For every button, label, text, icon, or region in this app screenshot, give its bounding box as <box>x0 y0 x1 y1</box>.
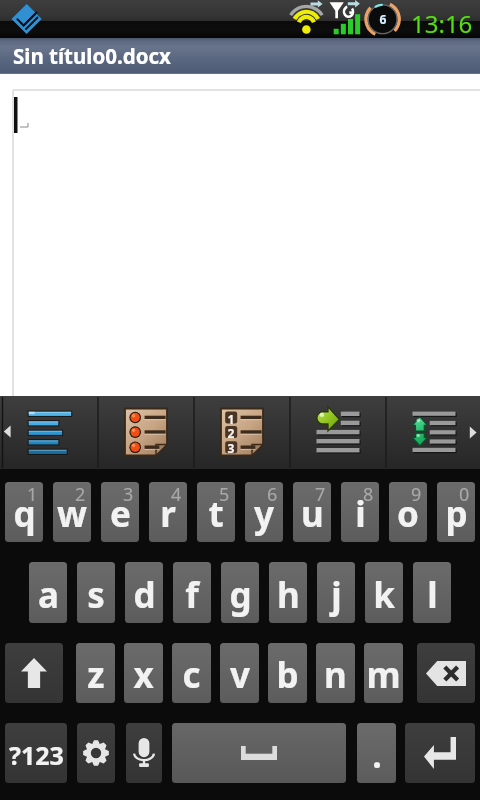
button[interactable]: ?123 <box>5 723 67 783</box>
button[interactable]: n <box>316 643 355 703</box>
staticText: p <box>445 490 468 538</box>
button[interactable]: Sin título0.docx <box>0 38 480 74</box>
button[interactable]: space <box>172 723 346 783</box>
button[interactable]: k <box>365 562 403 623</box>
staticText: 7 <box>315 482 326 507</box>
button[interactable]: l <box>413 562 451 623</box>
button[interactable]: del <box>417 643 475 703</box>
button[interactable]: gear <box>77 723 115 783</box>
button[interactable]: y <box>245 482 283 542</box>
button[interactable]: Numbered list <box>195 396 291 469</box>
staticText: k <box>373 571 395 619</box>
button[interactable]: c <box>172 643 211 703</box>
button[interactable]: j <box>317 562 355 623</box>
button[interactable]: d <box>125 562 163 623</box>
staticText: w <box>57 490 87 538</box>
button[interactable]: a <box>29 562 67 623</box>
button[interactable]: t <box>197 482 235 542</box>
staticText: 3 <box>225 440 237 456</box>
staticText: 8 <box>363 482 374 507</box>
button[interactable]: b <box>268 643 307 703</box>
staticText: u <box>301 490 324 538</box>
button[interactable]: f <box>173 562 211 623</box>
staticText: o <box>397 490 419 538</box>
button[interactable]: . <box>357 723 396 783</box>
staticText: q <box>13 490 36 538</box>
staticText: e <box>110 490 131 538</box>
staticText: 2 <box>75 482 86 507</box>
staticText: . <box>372 732 382 778</box>
button[interactable]: v <box>220 643 259 703</box>
staticText: m <box>366 651 401 699</box>
staticText: 9 <box>411 482 422 507</box>
button[interactable]: shift <box>5 643 63 703</box>
button[interactable]: h <box>269 562 307 623</box>
button[interactable]: w <box>53 482 91 542</box>
staticText: a <box>38 571 59 619</box>
staticText: 1 <box>27 482 38 507</box>
button[interactable]: s <box>77 562 115 623</box>
staticText: j <box>331 571 342 619</box>
button[interactable]: z <box>76 643 115 703</box>
staticText: ?123 <box>9 738 64 772</box>
staticText: i <box>355 490 366 538</box>
button[interactable]: Bulleted list <box>99 396 195 469</box>
staticText: t <box>208 490 224 538</box>
staticText: z <box>87 651 105 699</box>
button[interactable]: p <box>437 482 475 542</box>
staticText: 0 <box>459 482 470 507</box>
button[interactable]: Align left <box>3 396 99 469</box>
button[interactable]: i <box>341 482 379 542</box>
button[interactable]: e <box>101 482 139 542</box>
staticText: g <box>229 571 252 619</box>
staticText: c <box>182 651 201 699</box>
button[interactable]: q <box>5 482 43 542</box>
staticText: 5 <box>219 482 230 507</box>
staticText: y <box>254 490 274 538</box>
staticText: n <box>324 651 347 699</box>
button[interactable]: g <box>221 562 259 623</box>
button[interactable]: m <box>364 643 403 703</box>
button[interactable]: x <box>124 643 163 703</box>
button[interactable]: enter <box>405 723 475 783</box>
button[interactable]: Indent <box>291 396 387 469</box>
staticText: s <box>87 571 105 619</box>
staticText: x <box>133 651 154 699</box>
button[interactable]: o <box>389 482 427 542</box>
staticText: 6 <box>377 11 389 27</box>
button[interactable]: Line spacing <box>387 396 480 469</box>
staticText: 1 <box>225 411 237 427</box>
staticText: 2 <box>225 425 237 441</box>
staticText: 13:16 <box>411 7 473 40</box>
staticText: h <box>277 571 300 619</box>
staticText: 3 <box>123 482 134 507</box>
staticText: 6 <box>267 482 278 507</box>
staticText: 4 <box>171 482 182 507</box>
staticText: d <box>133 571 156 619</box>
staticText: v <box>230 651 250 699</box>
staticText: b <box>276 651 299 699</box>
staticText: r <box>160 490 176 538</box>
staticText: f <box>185 571 199 619</box>
button[interactable]: mic <box>126 723 162 783</box>
staticText: Sin título0.docx <box>13 42 171 70</box>
staticText: l <box>427 571 438 619</box>
button[interactable]: r <box>149 482 187 542</box>
button[interactable]: u <box>293 482 331 542</box>
